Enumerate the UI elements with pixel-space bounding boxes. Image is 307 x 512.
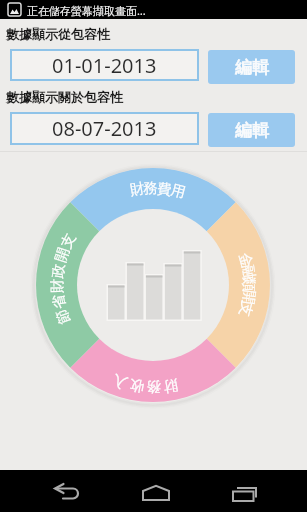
staticText: 類 (240, 277, 258, 292)
staticText: 財 (129, 179, 146, 199)
staticText: 01-01-2013 (52, 52, 157, 79)
staticText: 省 (49, 292, 69, 310)
staticText: 數據顯示從包容性 (6, 26, 110, 42)
staticText: 開 (51, 245, 73, 264)
button[interactable] (200, 470, 289, 512)
staticText: 務 (146, 378, 161, 396)
button[interactable] (22, 470, 111, 512)
staticText: 融 (239, 264, 259, 281)
staticText: 支 (57, 230, 80, 251)
button[interactable] (111, 470, 200, 512)
button[interactable]: 08-07-2013 (10, 112, 199, 145)
staticText: 收 (128, 376, 145, 396)
staticText: 用 (169, 180, 188, 202)
staticText: 費 (156, 179, 173, 199)
staticText: 入 (109, 371, 129, 393)
button[interactable]: 編輯 (208, 113, 295, 147)
staticText: 編輯 (235, 120, 269, 141)
button[interactable]: 編輯 (208, 50, 295, 84)
staticText: 數據顯示關於包容性 (6, 89, 123, 105)
staticText: 開 (239, 289, 259, 306)
staticText: 支 (235, 300, 256, 319)
staticText: 財 (162, 376, 179, 396)
staticText: 編輯 (235, 57, 269, 78)
staticText: 政 (48, 262, 68, 279)
staticText: 財 (48, 278, 66, 293)
staticText: 節 (52, 306, 74, 327)
button[interactable]: 01-01-2013 (10, 49, 199, 81)
staticText: 務 (143, 179, 158, 197)
staticText: 正在儲存螢幕擷取畫面… (27, 3, 146, 18)
staticText: 金 (235, 251, 257, 270)
staticText: 08-07-2013 (52, 115, 157, 142)
